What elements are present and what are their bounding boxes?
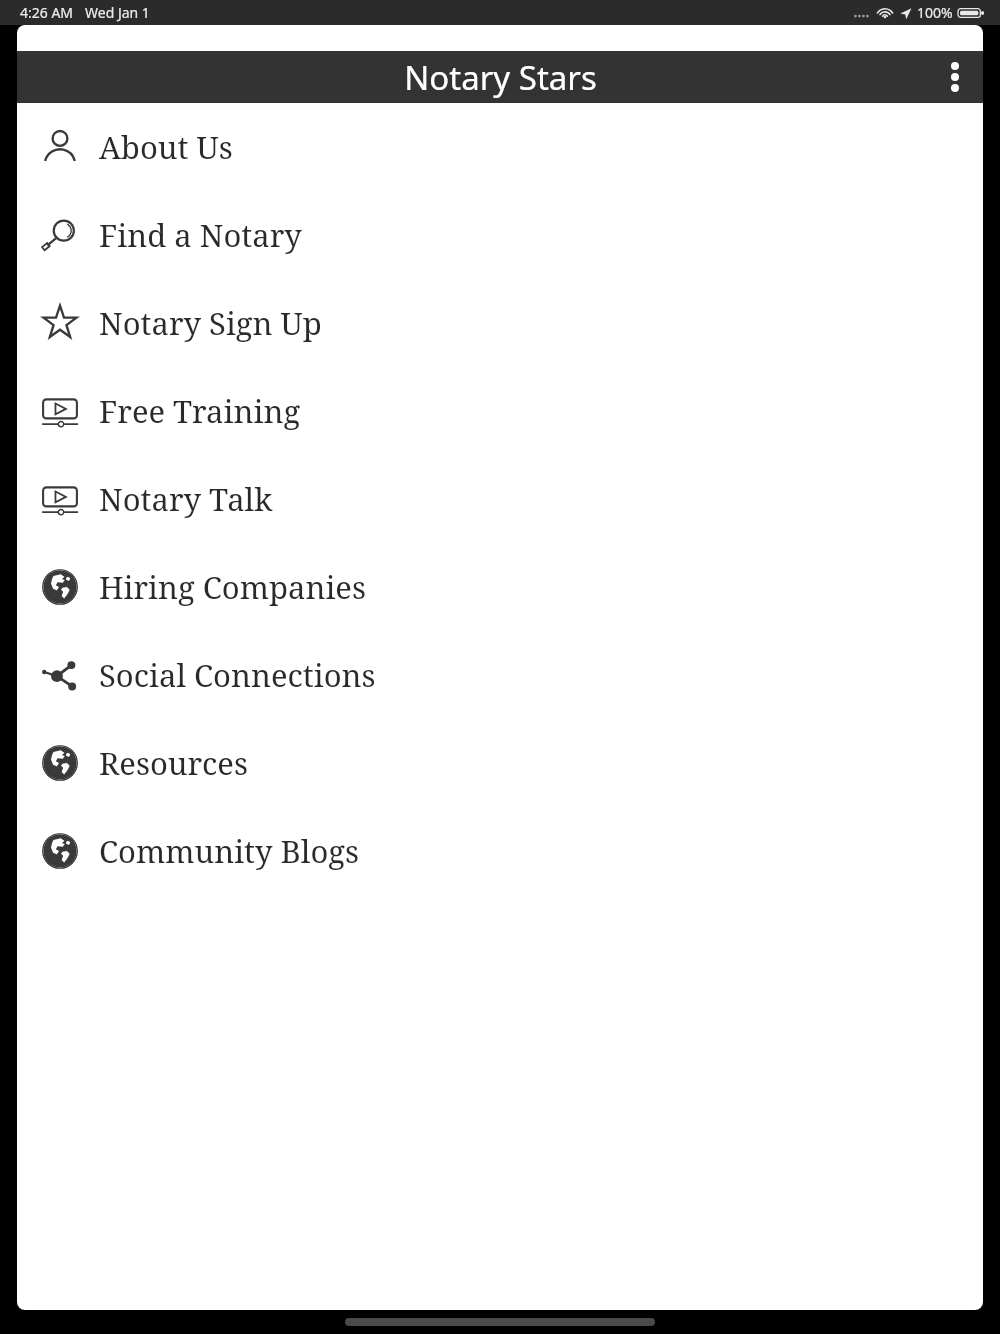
staticText: Find a Notary xyxy=(99,214,302,256)
button[interactable]: About Us xyxy=(17,103,983,191)
staticText: 100% xyxy=(917,3,953,22)
staticText: Hiring Companies xyxy=(99,566,366,608)
staticText: Wed Jan 1 xyxy=(85,3,150,22)
staticText: Resources xyxy=(99,742,248,784)
staticText: Community Blogs xyxy=(99,830,360,872)
button[interactable]: Notary Sign Up xyxy=(17,279,983,367)
button[interactable]: Resources xyxy=(17,719,983,807)
staticText: 4:26 AM xyxy=(20,3,74,22)
staticText: Notary Sign Up xyxy=(99,302,322,344)
staticText: Free Training xyxy=(99,390,301,432)
button[interactable]: Notary Talk xyxy=(17,455,983,543)
staticText: Notary Talk xyxy=(99,478,273,520)
button[interactable]: Social Connections xyxy=(17,631,983,719)
button[interactable]: Find a Notary xyxy=(17,191,983,279)
staticText: Notary Stars xyxy=(404,55,597,100)
button[interactable]: Community Blogs xyxy=(17,807,983,895)
staticText: About Us xyxy=(99,126,233,168)
button[interactable]: Hiring Companies xyxy=(17,543,983,631)
button[interactable]: More options xyxy=(927,51,983,103)
staticText: Social Connections xyxy=(99,654,376,696)
button[interactable]: Free Training xyxy=(17,367,983,455)
